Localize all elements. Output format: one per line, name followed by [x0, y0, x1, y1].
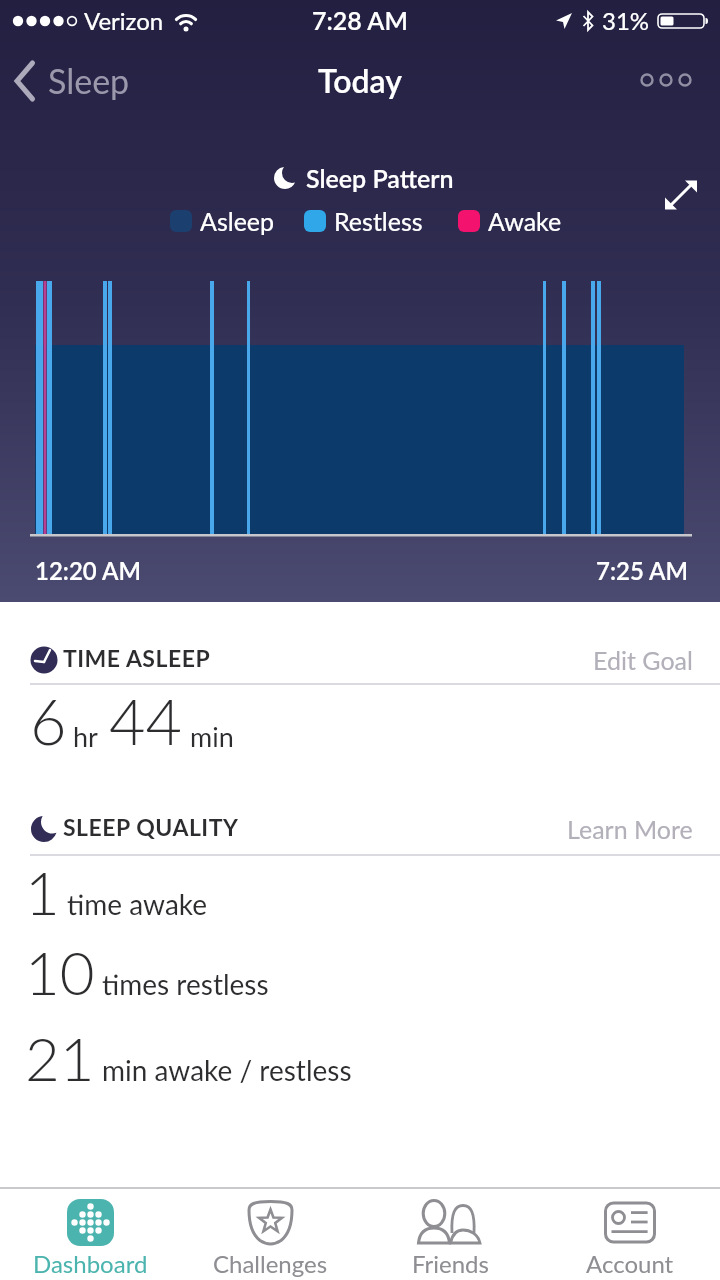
staticText: hr	[73, 720, 98, 752]
button[interactable]: Learn More	[567, 814, 693, 844]
staticText: Learn More	[567, 814, 693, 844]
staticText: 10	[25, 936, 95, 1008]
staticText: 6	[30, 683, 67, 759]
staticText: times restless	[102, 967, 269, 1001]
button[interactable]: Friends	[360, 1189, 540, 1280]
staticText: Asleep	[200, 206, 275, 236]
staticText: SLEEP QUALITY	[63, 813, 239, 841]
staticText: 7:25 AM	[596, 556, 688, 585]
staticText: Edit Goal	[593, 645, 693, 675]
button[interactable]	[664, 178, 698, 212]
staticText: 1	[25, 856, 60, 928]
button[interactable]: Dashboard	[0, 1189, 180, 1280]
staticText: TIME ASLEEP	[63, 644, 211, 672]
button[interactable]: TIME ASLEEP	[30, 646, 211, 674]
staticText: Friends	[412, 1249, 489, 1278]
staticText: Sleep Pattern	[306, 163, 454, 193]
staticText: Account	[586, 1249, 674, 1278]
staticText: Restless	[334, 206, 423, 236]
button[interactable]: SLEEP QUALITY	[30, 815, 239, 843]
staticText: 7:28 AM	[312, 5, 408, 35]
staticText: Challenges	[213, 1249, 328, 1278]
staticText: 31%	[602, 6, 650, 35]
button[interactable]: Challenges	[180, 1189, 360, 1280]
staticText: time awake	[67, 887, 208, 921]
staticText: Today	[318, 61, 402, 99]
button[interactable]: Sleep	[14, 60, 130, 101]
staticText: Dashboard	[33, 1249, 148, 1278]
staticText: min	[190, 720, 234, 752]
staticText: Verizon	[84, 6, 164, 35]
staticText: Awake	[488, 206, 562, 236]
staticText: min awake / restless	[102, 1053, 352, 1087]
staticText: 44	[109, 683, 183, 759]
staticText: 12:20 AM	[35, 556, 141, 585]
button[interactable]	[640, 73, 690, 87]
button[interactable]: Edit Goal	[593, 645, 693, 675]
staticText: Sleep	[48, 60, 130, 101]
button[interactable]: Account	[540, 1189, 720, 1280]
staticText: 21	[25, 1022, 95, 1094]
